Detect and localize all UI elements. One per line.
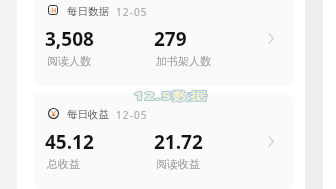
staticText: 总收益 xyxy=(47,157,80,171)
staticText: 每日数据 xyxy=(67,5,109,18)
button[interactable]: 查看详情 xyxy=(263,133,279,149)
staticText: 3,508 xyxy=(45,26,94,52)
staticText: 12-05 xyxy=(116,5,148,19)
staticText: 阅读收益 xyxy=(156,157,200,171)
button[interactable]: 每日数据 xyxy=(33,0,293,86)
staticText: 279 xyxy=(154,26,187,52)
staticText: 12.5数据 xyxy=(134,88,208,103)
staticText: 45.12 xyxy=(45,129,94,155)
staticText: 加书架人数 xyxy=(156,54,211,68)
staticText: 12-05 xyxy=(116,108,148,122)
staticText: 12.5数据 xyxy=(134,88,208,103)
staticText: 每日收益 xyxy=(67,108,109,121)
staticText: 21.72 xyxy=(154,129,203,155)
staticText: 阅读人数 xyxy=(47,54,91,68)
button[interactable]: 查看详情 xyxy=(263,30,279,46)
button[interactable]: 每日收益 xyxy=(33,93,293,189)
